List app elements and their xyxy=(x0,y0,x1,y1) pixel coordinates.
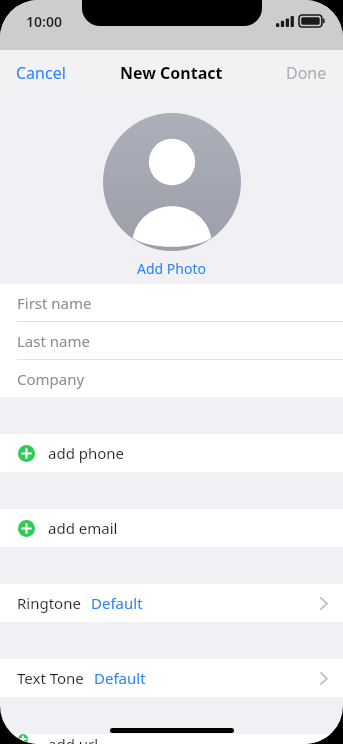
staticText: Default xyxy=(94,668,146,688)
button[interactable]: First name xyxy=(0,284,343,321)
button[interactable]: Last name xyxy=(0,322,343,359)
staticText: add phone xyxy=(48,443,125,463)
button[interactable]: Cancel xyxy=(0,54,82,92)
staticText: Ringtone xyxy=(17,593,81,613)
staticText: add url xyxy=(48,734,99,744)
staticText: Company xyxy=(17,369,85,389)
button[interactable]: Company xyxy=(0,360,343,397)
staticText: Last name xyxy=(17,331,90,351)
button[interactable]: add email xyxy=(0,509,343,547)
staticText: New Contact xyxy=(120,62,223,84)
staticText: Done xyxy=(286,62,327,84)
staticText: Cancel xyxy=(16,62,66,84)
button[interactable]: Ringtone xyxy=(0,584,343,622)
staticText: add email xyxy=(48,518,118,538)
button[interactable]: Done xyxy=(270,54,343,92)
staticText: First name xyxy=(17,293,92,313)
staticText: Text Tone xyxy=(17,668,84,688)
staticText: Default xyxy=(91,593,143,613)
button[interactable]: Text Tone xyxy=(0,659,343,697)
button[interactable]: Add Photo xyxy=(103,113,241,251)
button[interactable]: Add Photo xyxy=(125,257,218,280)
staticText: 10:00 xyxy=(26,12,62,31)
staticText: Add Photo xyxy=(137,259,206,278)
button[interactable]: add phone xyxy=(0,434,343,472)
button[interactable]: add url xyxy=(0,734,343,744)
